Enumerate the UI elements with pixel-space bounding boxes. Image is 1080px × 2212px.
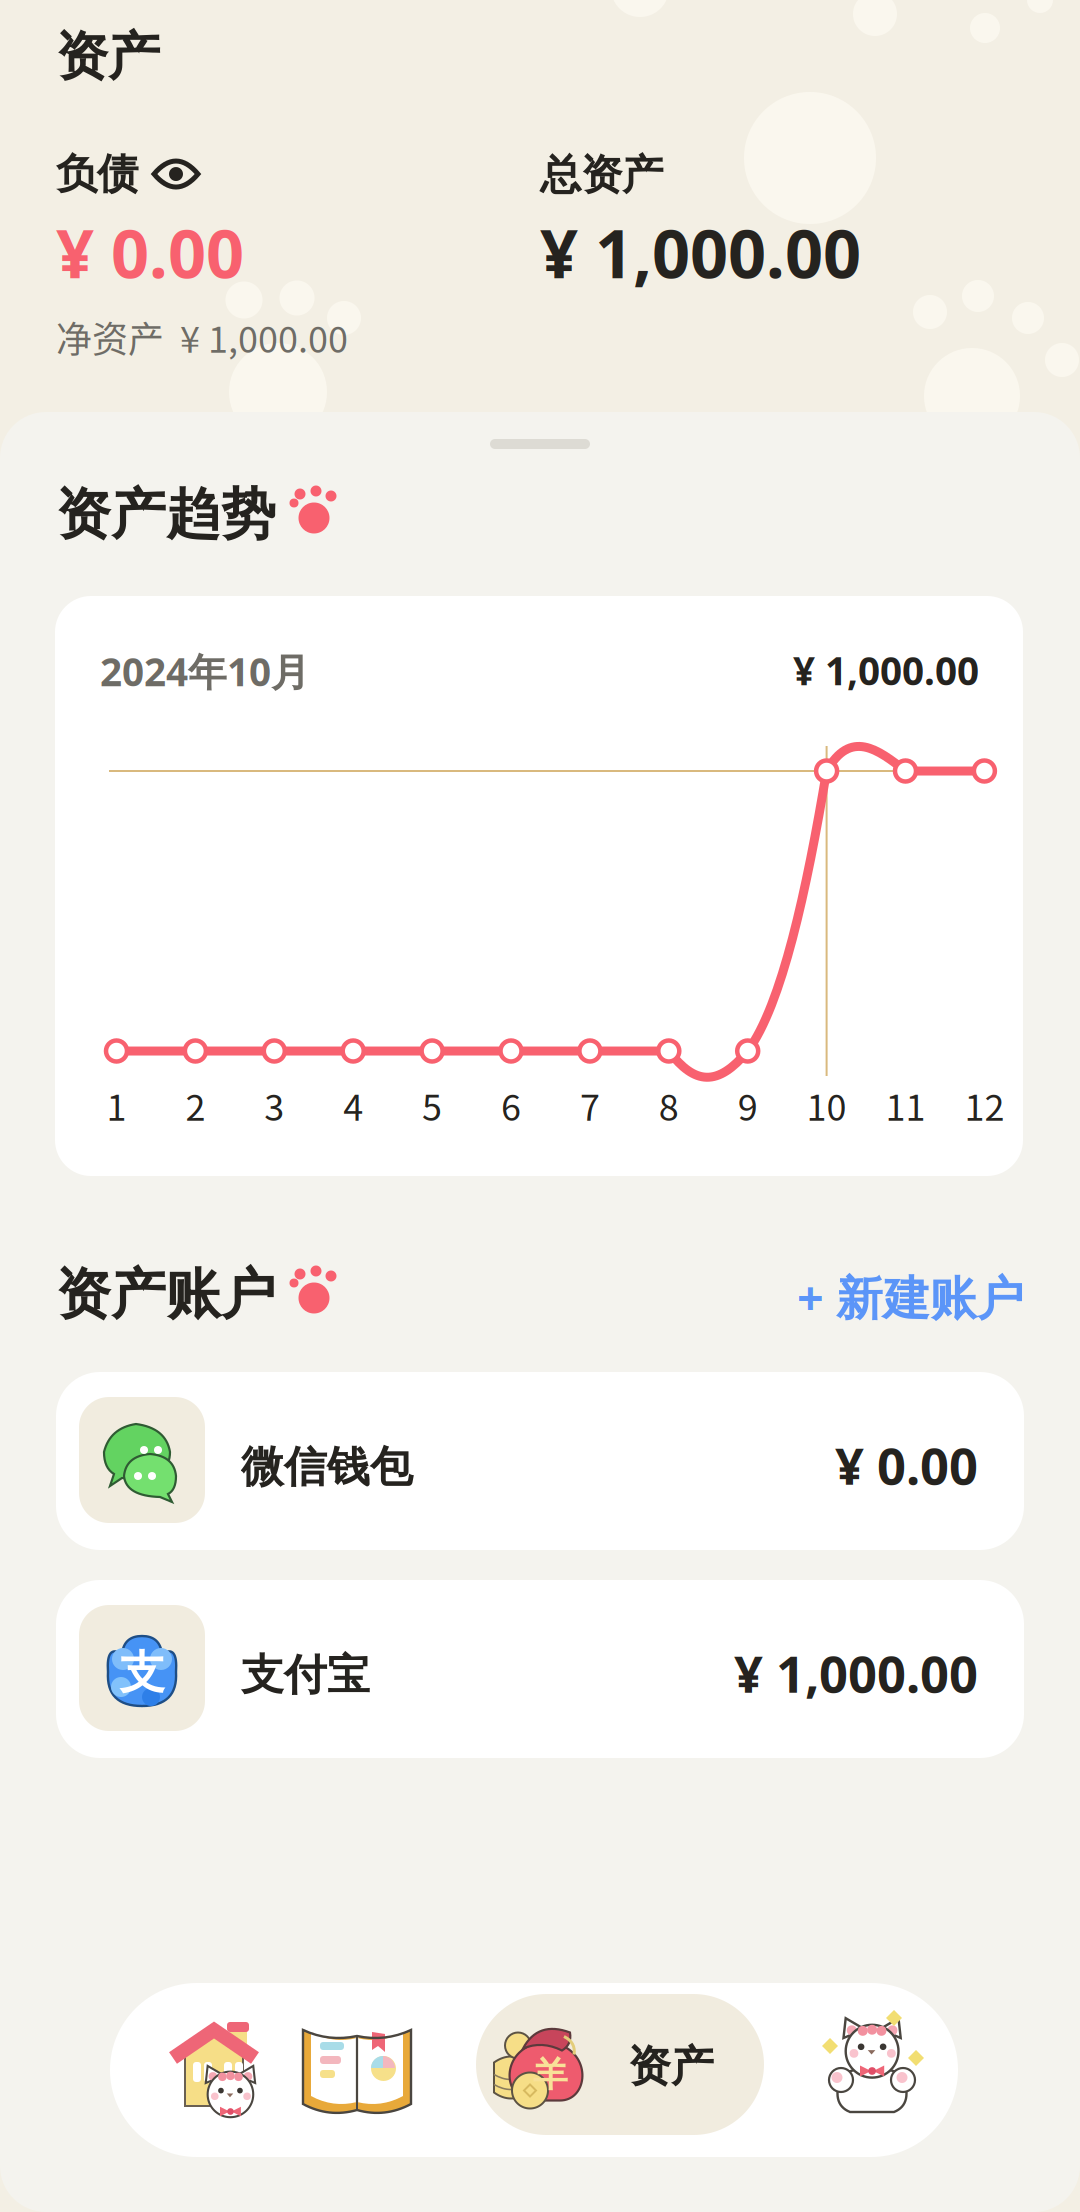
staticText: 10 xyxy=(807,1079,847,1131)
staticText: 羊 xyxy=(533,2052,568,2096)
staticText: 资产账户 xyxy=(56,1260,276,1329)
button[interactable]: 羊 xyxy=(476,1994,764,2135)
button[interactable]: 首页 xyxy=(157,2012,277,2132)
staticText: 支付宝 xyxy=(241,1648,370,1702)
staticText: 12 xyxy=(964,1079,1004,1131)
staticText: 支 xyxy=(119,1644,164,1701)
button[interactable]: 支 xyxy=(56,1580,1024,1758)
staticText: 3 xyxy=(264,1079,284,1131)
staticText: ¥ 1,000.00 xyxy=(793,644,979,697)
staticText: 6 xyxy=(501,1079,521,1131)
staticText: 2 xyxy=(185,1079,205,1131)
button[interactable]: 我的 xyxy=(812,2008,932,2128)
staticText: 资产 xyxy=(56,24,160,89)
staticText: ¥ 0.00 xyxy=(835,1430,978,1499)
button[interactable]: + 新建账户 xyxy=(644,1262,1024,1332)
staticText: 1 xyxy=(106,1079,126,1131)
staticText: 9 xyxy=(738,1079,758,1131)
staticText: ¥ 1,000.00 xyxy=(540,207,861,298)
staticText: 5 xyxy=(422,1079,442,1131)
staticText: 资产 xyxy=(628,2040,714,2093)
staticText: 7 xyxy=(580,1079,600,1131)
staticText: + 新建账户 xyxy=(797,1265,1024,1329)
staticText: 4 xyxy=(343,1079,363,1131)
staticText: 资产趋势 xyxy=(56,480,276,549)
staticText: 8 xyxy=(659,1079,679,1131)
staticText: 负债 xyxy=(56,148,138,200)
staticText: 微信钱包 xyxy=(241,1440,413,1494)
staticText: ¥ 1,000.00 xyxy=(734,1638,978,1707)
staticText: 总资产 xyxy=(540,149,663,201)
button[interactable]: 明细 xyxy=(297,2010,417,2130)
staticText: ¥ 0.00 xyxy=(56,207,244,298)
button[interactable]: 微信钱包 xyxy=(56,1372,1024,1550)
staticText: 2024年10月 xyxy=(100,645,310,698)
staticText: 净资产 ¥ 1,000.00 xyxy=(56,311,348,363)
staticText: 11 xyxy=(885,1079,925,1131)
